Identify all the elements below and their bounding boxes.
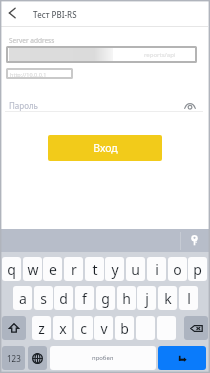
button[interactable]: l [179,286,198,310]
button[interactable]: i [147,257,166,281]
button[interactable]: y [105,257,124,281]
button[interactable]: z [32,316,51,340]
staticText: t [92,260,98,279]
staticText: h [122,289,131,308]
staticText: o [173,260,182,279]
button[interactable]: reports/api [6,46,197,63]
staticText: d [59,289,68,308]
staticText: reports/api [144,51,176,59]
button[interactable]: Пароль [5,92,203,112]
staticText: w [27,260,39,279]
staticText: p [193,260,202,279]
button[interactable]: a [13,286,32,310]
button[interactable]: j [137,286,156,310]
button[interactable]: Go [158,346,206,370]
button[interactable]: t [85,257,104,281]
staticText: z [38,319,45,338]
staticText: f [82,289,87,308]
staticText: y [111,260,119,279]
button[interactable]: b [115,316,134,340]
button[interactable]: пробел [50,346,156,370]
button[interactable]: w [23,257,42,281]
button[interactable]: c [74,316,93,340]
button[interactable]: f [75,286,94,310]
staticText: b [120,319,129,338]
staticText: пробел [92,354,114,362]
button[interactable]: http://10.0.0.1 [6,68,73,79]
staticText: a [19,289,27,308]
button[interactable]: 123 [2,346,25,370]
staticText: i [155,260,159,279]
button[interactable]: Password manager [181,229,207,252]
button[interactable]: k [158,286,177,310]
button[interactable]: h [117,286,136,310]
button[interactable]: Backspace [184,316,208,340]
staticText: v [100,319,108,338]
button[interactable]: u [126,257,145,281]
staticText: 123 [7,353,21,364]
button[interactable]: p [188,257,207,281]
button[interactable]: Change language [28,346,47,370]
button[interactable] [157,316,176,340]
staticText: Пароль [9,100,38,111]
staticText: u [131,260,140,279]
staticText: http://10.0.0.1 [10,71,47,78]
staticText: g [101,289,110,308]
staticText: Тест PBI-RS [33,9,77,20]
button[interactable]: g [96,286,115,310]
staticText: q [7,260,16,279]
button[interactable]: o [168,257,187,281]
staticText: l [187,289,191,308]
button[interactable]: Вход [48,135,162,161]
button[interactable]: s [34,286,53,310]
button[interactable]: Back [3,4,21,22]
button[interactable]: Shift [2,316,26,340]
staticText: j [145,289,149,308]
staticText: s [40,289,47,308]
button[interactable]: q [2,257,21,281]
button[interactable]: d [54,286,73,310]
staticText: x [59,319,67,338]
button[interactable]: x [53,316,72,340]
button[interactable]: e [43,257,62,281]
button[interactable]: v [94,316,113,340]
staticText: c [80,319,87,338]
button[interactable]: Show password [180,96,199,115]
staticText: Вход [93,141,118,155]
staticText: e [49,260,57,279]
button[interactable] [136,316,155,340]
staticText: Server address [9,36,55,45]
staticText: r [71,260,77,279]
staticText: k [164,289,172,308]
button[interactable]: r [64,257,83,281]
